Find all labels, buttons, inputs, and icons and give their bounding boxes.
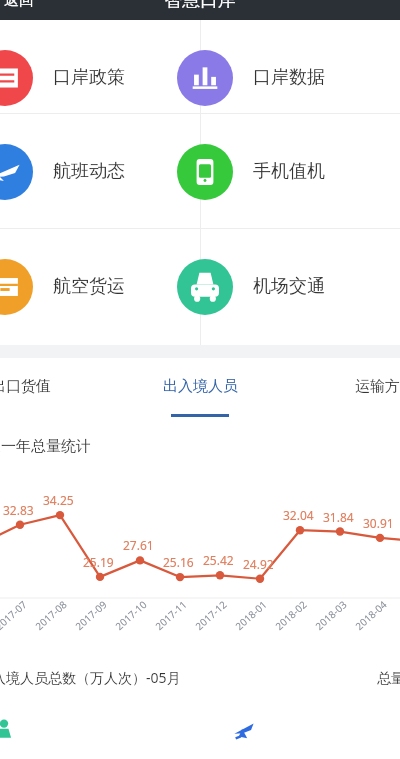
- button[interactable]: 口岸政策: [0, 20, 200, 135]
- staticText: 24.92: [243, 556, 274, 572]
- staticText: 出入境人员: [163, 377, 238, 396]
- staticText: 25.19: [83, 554, 114, 570]
- staticText: 34.25: [43, 492, 74, 508]
- staticText: 机场交通: [253, 275, 325, 298]
- staticText: 32.04: [283, 507, 314, 523]
- button[interactable]: 服务: [0, 714, 20, 746]
- button[interactable]: 手机值机: [200, 114, 400, 229]
- staticText: 32.83: [3, 502, 34, 518]
- button[interactable]: 口岸数据: [200, 20, 400, 135]
- staticText: 手机值机: [253, 160, 325, 183]
- staticText: 返回: [4, 0, 34, 10]
- staticText: 25.42: [203, 552, 234, 568]
- staticText: 航班动态: [53, 160, 125, 183]
- button[interactable]: 航班动态: [0, 114, 200, 229]
- staticText: 31.84: [323, 509, 354, 525]
- button[interactable]: 出入境人员: [145, 358, 255, 425]
- staticText: 出入境人员总数（万人次）-05月: [0, 668, 181, 687]
- staticText: 2018-03: [312, 597, 350, 633]
- staticText: 智慧口岸: [164, 0, 236, 9]
- staticText: 2018-01: [232, 597, 270, 633]
- staticText: 25.16: [163, 554, 194, 570]
- staticText: 2017-07: [0, 597, 30, 633]
- button[interactable]: 航班: [228, 714, 260, 746]
- button[interactable]: 航空货运: [0, 229, 200, 344]
- staticText: 2017-08: [32, 597, 70, 633]
- staticText: 2017-12: [192, 597, 230, 633]
- button[interactable]: 运输方式: [330, 358, 400, 425]
- staticText: 2017-10: [112, 597, 150, 633]
- staticText: 2018-02: [272, 597, 310, 633]
- staticText: 航空货运: [53, 275, 125, 298]
- staticText: 总量3: [377, 668, 400, 687]
- staticText: 2017-09: [72, 597, 110, 633]
- staticText: 口岸数据: [253, 66, 325, 89]
- button[interactable]: 机场交通: [200, 229, 400, 344]
- staticText: 2017-11: [152, 597, 190, 633]
- staticText: 近一年总量统计: [0, 437, 91, 456]
- staticText: 2018-04: [352, 597, 390, 633]
- staticText: 运输方式: [355, 377, 400, 396]
- staticText: 30.91: [363, 515, 394, 531]
- staticText: 口岸政策: [53, 66, 125, 89]
- staticText: 27.61: [123, 537, 154, 553]
- button[interactable]: 进出口货值: [0, 358, 68, 425]
- staticText: 进出口货值: [0, 377, 51, 396]
